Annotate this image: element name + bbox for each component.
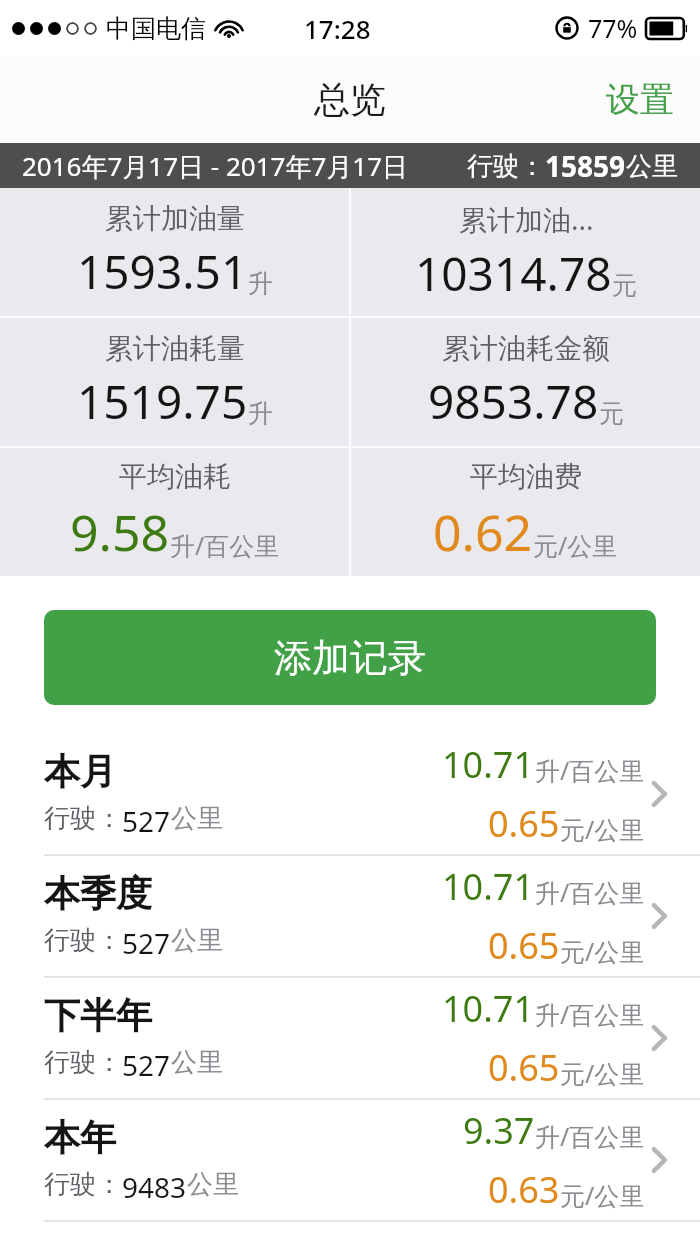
staticText: 设置: [606, 78, 674, 121]
staticText: 10.71: [442, 740, 535, 789]
staticText: 平均油费: [470, 459, 582, 494]
button[interactable]: 累计加油量: [0, 188, 349, 316]
staticText: 527: [122, 802, 171, 840]
staticText: 总览: [314, 77, 386, 122]
button[interactable]: 本月: [0, 734, 700, 854]
staticText: 下半年: [44, 993, 152, 1038]
staticText: 公里: [171, 1046, 223, 1079]
staticText: 行驶：: [44, 802, 122, 835]
staticText: 0.62: [433, 498, 533, 566]
staticText: 平均油耗: [119, 459, 231, 494]
staticText: 元/公里: [560, 1178, 645, 1212]
other: Open details: [644, 1025, 670, 1051]
button[interactable]: 本季度: [0, 856, 700, 976]
staticText: 中国电信: [106, 13, 206, 44]
staticText: 累计油耗金额: [442, 331, 610, 366]
staticText: 17:28: [304, 11, 371, 46]
button[interactable]: 添加记录: [44, 610, 656, 705]
other: Open details: [644, 781, 670, 807]
button[interactable]: 累计油耗量: [0, 318, 349, 446]
button[interactable]: 平均油费: [351, 448, 700, 576]
staticText: 9483: [122, 1168, 187, 1206]
staticText: 1519.75: [77, 370, 248, 433]
staticText: 0.63: [488, 1165, 560, 1214]
staticText: 10.71: [442, 862, 535, 911]
staticText: 元/公里: [560, 934, 645, 968]
button[interactable]: 累计油耗金额: [351, 318, 700, 446]
staticText: 升/百公里: [535, 1119, 645, 1153]
staticText: 行驶：: [44, 1168, 122, 1201]
staticText: 公里: [626, 150, 678, 183]
button[interactable]: 下半年: [0, 978, 700, 1098]
staticText: 2016年7月17日 - 2017年7月17日: [22, 148, 409, 184]
staticText: 77%: [588, 11, 638, 45]
staticText: 升: [248, 398, 273, 429]
staticText: 累计加油...: [459, 200, 594, 238]
staticText: 527: [122, 924, 171, 962]
staticText: 9853.78: [428, 370, 599, 433]
staticText: 元/公里: [560, 1056, 645, 1090]
staticText: 累计加油量: [105, 201, 245, 236]
staticText: 元/公里: [533, 528, 618, 562]
staticText: 升/百公里: [170, 528, 280, 562]
staticText: 0.65: [488, 1043, 560, 1092]
staticText: 0.65: [488, 921, 560, 970]
staticText: 15859: [545, 147, 626, 185]
other: Open details: [644, 1147, 670, 1173]
staticText: 升: [248, 268, 273, 299]
staticText: 9.37: [463, 1106, 535, 1155]
staticText: 元/公里: [560, 812, 645, 846]
staticText: 本月: [44, 749, 116, 794]
staticText: 元: [599, 398, 624, 429]
staticText: 527: [122, 1046, 171, 1084]
staticText: 添加记录: [274, 634, 426, 682]
staticText: 累计油耗量: [105, 331, 245, 366]
staticText: 9.58: [70, 498, 170, 566]
staticText: 0.65: [488, 799, 560, 848]
staticText: 升/百公里: [535, 875, 645, 909]
staticText: 1593.51: [77, 240, 248, 303]
staticText: 元: [612, 270, 637, 301]
staticText: 10.71: [442, 984, 535, 1033]
staticText: 公里: [171, 924, 223, 957]
staticText: 10314.78: [415, 242, 612, 305]
staticText: 升/百公里: [535, 997, 645, 1031]
button[interactable]: 累计加油...: [351, 188, 700, 316]
staticText: 行驶：: [44, 924, 122, 957]
staticText: 升/百公里: [535, 753, 645, 787]
button[interactable]: 平均油耗: [0, 448, 349, 576]
staticText: 行驶：: [44, 1046, 122, 1079]
staticText: 公里: [171, 802, 223, 835]
button[interactable]: 本年: [0, 1100, 700, 1220]
other: Open details: [644, 903, 670, 929]
button[interactable]: 设置: [580, 64, 700, 135]
staticText: 本年: [44, 1115, 116, 1160]
staticText: 行驶：: [467, 150, 545, 183]
staticText: 公里: [187, 1168, 239, 1201]
staticText: 本季度: [44, 871, 152, 916]
